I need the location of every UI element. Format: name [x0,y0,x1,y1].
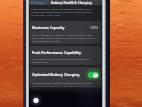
staticText: Battery Health & Charging [51,1,92,5]
staticText: Peak Performance Capability [32,50,81,55]
staticText: Optimized Battery Charging [32,72,80,77]
button[interactable]: Optimized Battery Charging [30,67,101,92]
staticText: as they age. [31,13,46,16]
staticText: usage between charges. [32,39,61,42]
staticText: This is a measure of battery capacity re… [32,33,95,36]
staticText: daily charging routine so it can wait to… [32,84,95,87]
staticText: it was new. Lower capacity may result in… [32,36,97,39]
button[interactable]: Maximum Capacity [30,21,101,44]
staticText: To reduce battery ageing, iPhone learns … [32,81,92,84]
staticText: past 80% until you need to use it. [32,87,71,90]
staticText: Your battery is currently supporting nor… [32,57,90,60]
button[interactable]: Peak Performance Capability [30,46,101,65]
button[interactable]: Back to Battery [29,0,47,5]
staticText: consumable components that become less e… [31,10,92,13]
staticText: Maximum Capacity [32,25,65,30]
staticText: Battery [33,0,46,5]
button[interactable]: Learn more... [46,13,62,16]
staticText: Phone batteries, like all rechargeable b… [31,7,91,10]
button[interactable]: Optimized Battery Charging toggle [87,71,99,78]
staticText: 100% [90,26,99,30]
staticText: performance. [32,60,48,63]
